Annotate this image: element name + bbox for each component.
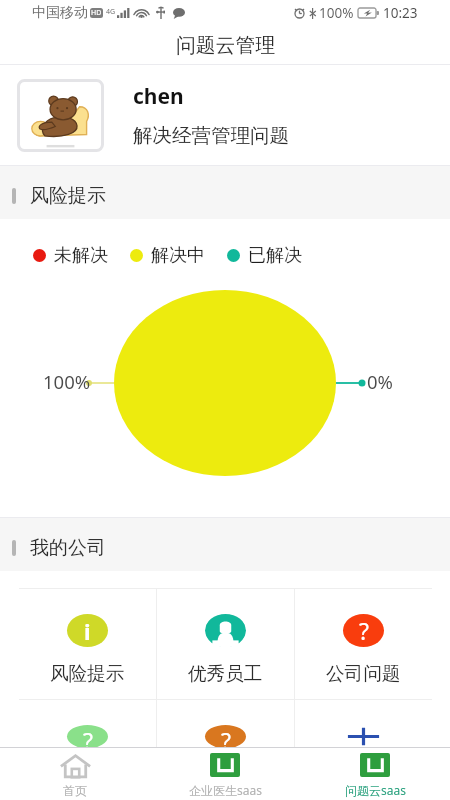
staticText: 优秀员工: [188, 662, 263, 685]
staticText: 100%: [43, 369, 91, 394]
button[interactable]: chen: [0, 65, 450, 165]
staticText: 企业医生saas: [189, 782, 262, 798]
staticText: ?: [83, 725, 93, 748]
staticText: ?: [359, 615, 369, 646]
button[interactable]: Item: [295, 700, 432, 748]
staticText: 0%: [367, 369, 393, 394]
staticText: 解决经营管理问题: [133, 123, 289, 148]
button[interactable]: 风险提示: [19, 589, 156, 699]
staticText: 未解决: [54, 244, 108, 267]
button[interactable]: 首页: [0, 748, 150, 800]
staticText: 问题云saas: [345, 782, 406, 798]
staticText: 10:23: [383, 4, 418, 22]
staticText: 已解决: [248, 244, 302, 267]
button[interactable]: 公司问题: [295, 589, 432, 699]
staticText: 100%: [319, 4, 354, 22]
staticText: 解决中: [151, 244, 205, 267]
button[interactable]: Item: [157, 700, 294, 748]
staticText: 中国移动: [32, 4, 88, 22]
button[interactable]: 企业医生saas: [150, 748, 300, 800]
staticText: chen: [133, 82, 184, 111]
staticText: 风险提示: [50, 662, 125, 685]
staticText: 问题云管理: [176, 33, 275, 58]
button[interactable]: Item: [19, 700, 156, 748]
staticText: ?: [221, 725, 231, 748]
staticText: 首页: [63, 783, 87, 798]
staticText: i: [84, 616, 91, 646]
button[interactable]: 优秀员工: [157, 589, 294, 699]
other: 首页: [60, 754, 91, 778]
staticText: 风险提示: [30, 184, 106, 208]
staticText: HD: [91, 8, 102, 18]
staticText: 4G: [106, 7, 116, 17]
staticText: 我的公司: [30, 536, 106, 560]
button[interactable]: 问题云saas: [300, 748, 450, 800]
staticText: 公司问题: [326, 662, 401, 685]
